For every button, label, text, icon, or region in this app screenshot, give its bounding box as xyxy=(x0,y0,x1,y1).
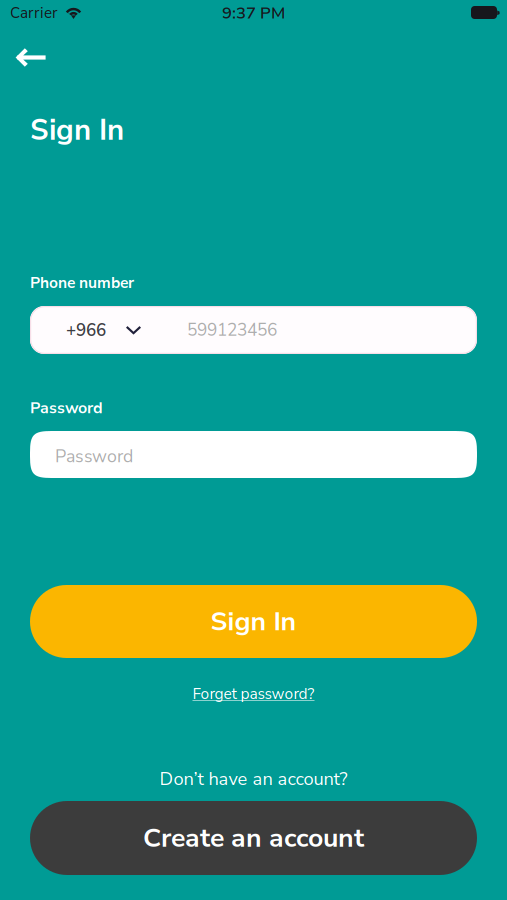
staticText: Forget password? xyxy=(192,683,314,704)
button[interactable]: Create an account xyxy=(30,801,477,875)
button[interactable]: Country code +966 xyxy=(30,306,187,354)
staticText: Sign In xyxy=(30,110,124,150)
staticText: Don’t have an account? xyxy=(159,766,347,791)
staticText: Password xyxy=(30,397,103,419)
staticText: Carrier xyxy=(10,3,58,23)
staticText: +966 xyxy=(66,319,106,342)
staticText: 9:37 PM xyxy=(222,2,285,24)
staticText: Password xyxy=(55,444,133,469)
button[interactable]: Sign In xyxy=(30,585,477,658)
staticText: Phone number xyxy=(30,272,134,294)
button[interactable]: Back xyxy=(0,30,75,86)
staticText: Sign In xyxy=(210,603,296,640)
button[interactable]: Forget password? xyxy=(30,682,477,706)
staticText: 599123456 xyxy=(187,318,277,342)
staticText: Create an account xyxy=(143,820,364,856)
